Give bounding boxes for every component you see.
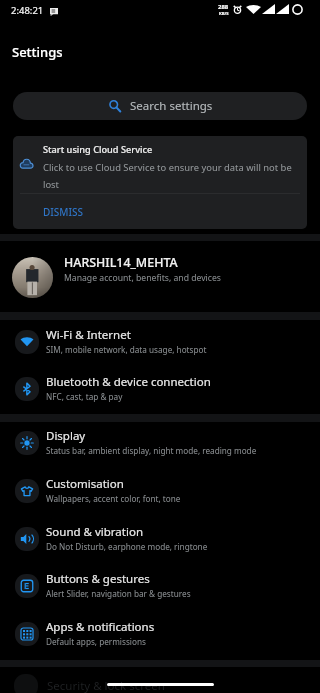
staticText: Alert Slider, navigation bar & gestures	[46, 588, 191, 599]
button[interactable]: HARSHIL14_MEHTA	[0, 241, 320, 313]
staticText: Buttons & gestures	[46, 571, 150, 587]
button[interactable]: Sound & vibration	[0, 517, 320, 565]
staticText: 288	[218, 3, 229, 11]
staticText: DISMISS	[43, 205, 84, 219]
staticText: NFC, cast, tap & pay	[46, 391, 123, 402]
staticText: Apps & notifications	[46, 619, 155, 635]
staticText: Start using Cloud Service	[43, 143, 153, 156]
staticText: Security & lock screen	[47, 678, 165, 693]
staticText: Click to use Cloud Service to ensure you…	[43, 161, 297, 191]
button[interactable]: Search settings	[13, 92, 307, 120]
staticText: Search settings	[130, 98, 213, 114]
button[interactable]: Display	[0, 421, 320, 469]
button[interactable]: Bluetooth & device connection	[0, 367, 320, 414]
staticText: Bluetooth & device connection	[46, 374, 211, 390]
button[interactable]: Wi-Fi & Internet	[0, 320, 320, 367]
staticText: KB/S	[219, 11, 229, 17]
button[interactable]: Customisation	[0, 469, 320, 517]
staticText: Customisation	[46, 476, 124, 492]
staticText: 2:48:21	[11, 4, 44, 17]
button[interactable]: Security & lock screen	[0, 667, 320, 693]
button[interactable]: Apps & notifications	[0, 612, 320, 660]
staticText: Status bar, ambient display, night mode,…	[46, 445, 257, 456]
staticText: Wi-Fi & Internet	[46, 327, 131, 343]
staticText: Do Not Disturb, earphone mode, ringtone	[46, 541, 208, 552]
staticText: SIM, mobile network, data usage, hotspot	[46, 344, 207, 355]
staticText: Display	[46, 428, 86, 444]
staticText: Manage account, benefits, and devices	[64, 272, 221, 284]
staticText: HARSHIL14_MEHTA	[64, 254, 178, 271]
staticText: Default apps, permissions	[46, 636, 146, 647]
staticText: Wallpapers, accent color, font, tone	[46, 493, 181, 504]
staticText: Sound & vibration	[46, 524, 143, 540]
button[interactable]: DISMISS	[13, 195, 307, 229]
button[interactable]: Start using Cloud Service	[13, 136, 307, 229]
button[interactable]: Buttons & gestures	[0, 564, 320, 612]
staticText: Settings	[12, 43, 63, 61]
